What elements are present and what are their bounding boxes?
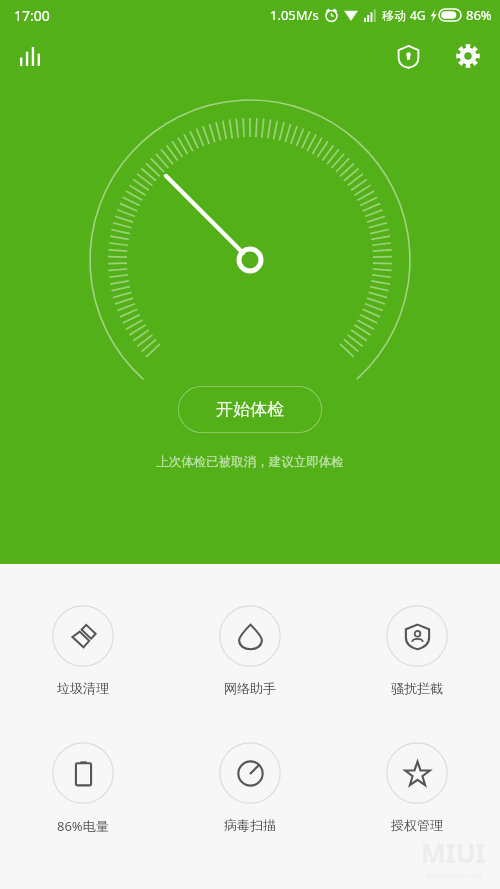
other: 授权管理 bbox=[386, 742, 448, 804]
staticText: 网络助手 bbox=[224, 680, 276, 696]
staticText: 授权管理 bbox=[391, 817, 443, 833]
button[interactable]: 网络助手 bbox=[166, 601, 333, 700]
button[interactable]: 骚扰拦截 bbox=[333, 601, 500, 700]
other: 网络助手 bbox=[219, 605, 281, 667]
other: 病毒扫描 bbox=[219, 742, 281, 804]
button[interactable]: 垃圾清理 bbox=[0, 601, 166, 700]
staticText: 17:00 bbox=[14, 6, 50, 25]
staticText: 上次体检已被取消，建议立即体检 bbox=[156, 454, 344, 470]
staticText: 骚扰拦截 bbox=[391, 680, 443, 696]
staticText: 病毒扫描 bbox=[224, 817, 276, 833]
staticText: MIUI bbox=[421, 835, 486, 870]
other: 骚扰拦截 bbox=[386, 605, 448, 667]
staticText: 开始体检 bbox=[216, 399, 284, 420]
other: 垃圾清理 bbox=[52, 605, 114, 667]
staticText: 垃圾清理 bbox=[57, 680, 109, 696]
button[interactable]: 设置 bbox=[446, 34, 490, 78]
staticText: 86% bbox=[466, 6, 492, 24]
button[interactable]: 病毒扫描 bbox=[166, 738, 333, 837]
other: 86%电量 bbox=[52, 742, 114, 804]
staticText: 86%电量 bbox=[57, 817, 109, 835]
staticText: 1.05M/s bbox=[270, 6, 319, 24]
button[interactable]: 流量统计 bbox=[8, 34, 52, 78]
button[interactable]: 安全中心 bbox=[386, 34, 430, 78]
button[interactable]: 授权管理 bbox=[333, 738, 500, 837]
staticText: 4G bbox=[410, 7, 426, 23]
staticText: 移动 bbox=[382, 8, 406, 23]
button[interactable]: 86%电量 bbox=[0, 738, 166, 839]
button[interactable]: 开始体检 bbox=[178, 386, 322, 433]
